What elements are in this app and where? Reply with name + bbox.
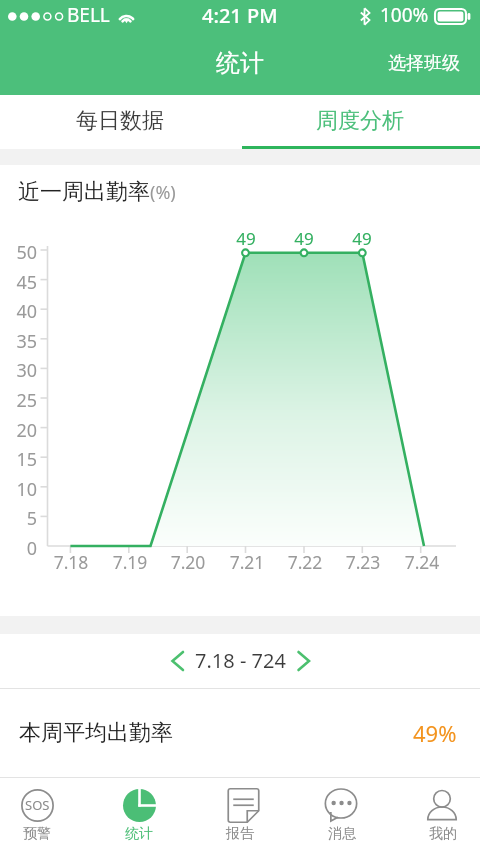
staticText: 0 [0, 536, 37, 561]
staticText: 7.18 [41, 550, 101, 574]
staticText: 周度分析 [316, 107, 404, 135]
button[interactable]: 选择班级 [374, 40, 480, 87]
staticText: 7.18 - 724 [195, 647, 286, 674]
staticText: 10 [0, 477, 37, 502]
staticText: 7.23 [333, 550, 393, 574]
staticText: 5 [0, 506, 37, 531]
staticText: 20 [0, 418, 37, 443]
button[interactable]: 统计 [117, 778, 161, 852]
staticText: 报告 [226, 825, 254, 843]
button[interactable]: SOS [15, 778, 59, 852]
staticText: 每日数据 [76, 107, 164, 135]
staticText: 49 [332, 227, 392, 250]
button[interactable]: 我的 [421, 778, 465, 852]
button[interactable]: 报告 [218, 778, 262, 852]
staticText: 7.20 [158, 550, 218, 574]
staticText: 统计 [216, 48, 264, 78]
staticText: 选择班级 [388, 52, 460, 75]
staticText: 4:21 PM [202, 2, 278, 29]
button[interactable]: 消息 [320, 778, 364, 852]
staticText: 近一周出勤率 [18, 178, 150, 206]
staticText: 消息 [328, 825, 356, 843]
button[interactable]: 每日数据 [0, 95, 240, 149]
button[interactable]: 周度分析 [240, 95, 480, 149]
staticText: 7.19 [100, 550, 160, 574]
staticText: 本周平均出勤率 [19, 719, 173, 747]
staticText: 49 [216, 227, 276, 250]
button[interactable]: Next week [286, 642, 321, 680]
button[interactable]: Previous week [160, 642, 195, 680]
staticText: 50 [0, 240, 37, 265]
staticText: 49 [274, 227, 334, 250]
staticText: 25 [0, 388, 37, 413]
staticText: 30 [0, 358, 37, 383]
staticText: 45 [0, 270, 37, 295]
staticText: 49% [413, 718, 457, 748]
staticText: 100% [380, 2, 429, 28]
staticText: 7.24 [392, 550, 452, 574]
staticText: SOS [25, 796, 50, 814]
staticText: 7.22 [275, 550, 335, 574]
staticText: 15 [0, 447, 37, 472]
staticText: 统计 [125, 825, 153, 843]
staticText: 40 [0, 299, 37, 324]
staticText: 35 [0, 329, 37, 354]
staticText: 预警 [23, 825, 51, 843]
staticText: BELL [67, 2, 110, 28]
staticText: (%) [150, 180, 176, 205]
staticText: 我的 [429, 825, 457, 843]
staticText: 7.21 [217, 550, 277, 574]
